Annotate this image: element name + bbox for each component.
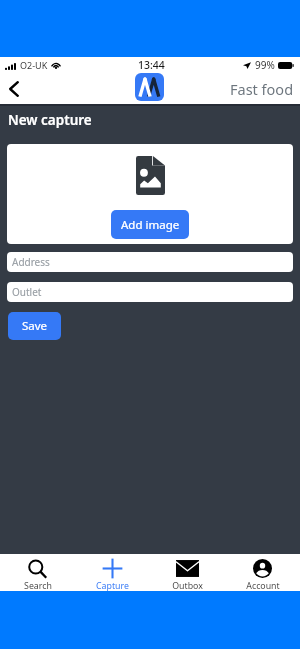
staticText: Address xyxy=(12,255,50,269)
button[interactable]: Save xyxy=(8,312,61,340)
staticText: Outbox xyxy=(172,580,203,591)
staticText: Outlet xyxy=(12,285,42,299)
staticText: 99% xyxy=(255,58,275,72)
staticText: 13:44 xyxy=(138,58,165,72)
button[interactable]: Add image xyxy=(111,210,189,239)
staticText: Account xyxy=(246,580,280,591)
staticText: O2-UK xyxy=(20,59,48,71)
button[interactable]: Outbox xyxy=(150,554,225,591)
staticText: Save xyxy=(22,318,48,334)
button[interactable]: Back xyxy=(0,73,28,104)
staticText: New capture xyxy=(8,111,92,129)
button[interactable]: Address xyxy=(7,252,293,272)
button[interactable]: Capture xyxy=(75,554,150,591)
button[interactable]: Account xyxy=(225,554,300,591)
staticText: Search xyxy=(24,580,52,591)
button[interactable]: Outlet xyxy=(7,282,293,302)
staticText: Fast food xyxy=(230,79,294,99)
button[interactable]: Search xyxy=(0,554,75,591)
button[interactable]: Home xyxy=(135,73,164,101)
staticText: Add image xyxy=(121,217,180,233)
staticText: Capture xyxy=(96,580,129,591)
